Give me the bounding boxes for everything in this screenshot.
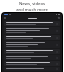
button[interactable]: Open article [4, 21, 60, 26]
button[interactable]: Open article [4, 27, 60, 34]
button[interactable]: Open article [4, 67, 60, 71]
button[interactable]: Open article [4, 41, 60, 48]
button[interactable]: Open article [4, 49, 60, 54]
button[interactable]: Search [58, 17, 60, 19]
staticText: News, videos and much more [16, 1, 48, 12]
button[interactable]: Open article [4, 35, 60, 40]
button[interactable]: Open article [4, 55, 60, 60]
button[interactable]: Open article [4, 61, 60, 66]
